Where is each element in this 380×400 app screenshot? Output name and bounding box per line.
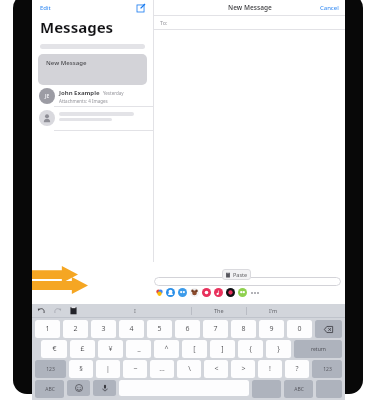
button[interactable]: App Store xyxy=(156,289,163,296)
button[interactable]: Game xyxy=(238,288,247,297)
staticText: JE xyxy=(45,93,50,100)
staticText: ] xyxy=(221,344,224,354)
button[interactable]: { xyxy=(238,340,263,358)
staticText: … xyxy=(159,364,165,374)
button[interactable]: | xyxy=(96,360,120,378)
staticText: New Message xyxy=(46,59,87,67)
button[interactable]: Backspace xyxy=(315,320,342,338)
button[interactable]: JE xyxy=(39,88,147,104)
staticText: Messages xyxy=(40,17,114,37)
button[interactable]: \ xyxy=(177,360,201,378)
staticText: ABC xyxy=(45,386,55,393)
staticText: 1 xyxy=(45,324,50,334)
staticText: Cancel xyxy=(320,4,339,12)
button[interactable]: > xyxy=(231,360,255,378)
button[interactable]: < xyxy=(204,360,228,378)
button[interactable]: Emoji xyxy=(67,380,90,396)
button[interactable]: New Message xyxy=(38,54,147,85)
button[interactable]: € xyxy=(41,340,67,358)
button[interactable]: [ xyxy=(182,340,207,358)
button[interactable]: More apps xyxy=(250,288,259,297)
staticText: John Example xyxy=(59,89,100,97)
button[interactable]: 5 xyxy=(147,320,172,338)
staticText: 2 xyxy=(73,324,78,334)
staticText: 7 xyxy=(213,324,218,334)
button[interactable]: £ xyxy=(70,340,95,358)
button[interactable]: 123 xyxy=(35,360,66,378)
staticText: Yesterday xyxy=(103,90,124,96)
staticText: ? xyxy=(295,364,299,374)
staticText: Attachments: 4 Images xyxy=(59,98,108,104)
button[interactable]: return xyxy=(294,340,342,358)
staticText: _ xyxy=(137,344,141,354)
staticText: ~ xyxy=(133,364,138,374)
button[interactable]: ? xyxy=(285,360,309,378)
button[interactable]: ^ xyxy=(154,340,179,358)
button[interactable]: 6 xyxy=(175,320,200,338)
button[interactable]: Paste xyxy=(69,306,78,315)
button[interactable]: Animoji xyxy=(178,288,187,297)
button[interactable]: Cancel xyxy=(318,2,341,14)
button[interactable]: ] xyxy=(210,340,235,358)
button[interactable]: Edit xyxy=(38,4,53,12)
staticText: 123 xyxy=(323,366,332,373)
button[interactable]: Undo xyxy=(37,306,46,315)
button[interactable]: § xyxy=(69,360,93,378)
staticText: 6 xyxy=(185,324,190,334)
button[interactable]: ! xyxy=(258,360,282,378)
staticText: 8 xyxy=(241,324,246,334)
button[interactable]: ABC xyxy=(35,380,64,398)
button[interactable]: ~ xyxy=(123,360,147,378)
staticText: 9 xyxy=(269,324,274,334)
button[interactable] xyxy=(154,277,341,286)
button[interactable]: Photos xyxy=(166,288,175,297)
staticText: New Message xyxy=(228,3,272,12)
button[interactable]: 9 xyxy=(259,320,284,338)
button[interactable]: … xyxy=(150,360,174,378)
staticText: £ xyxy=(80,344,85,354)
button[interactable]: ABC xyxy=(284,380,313,398)
button[interactable]: Digital Touch xyxy=(202,288,211,297)
button[interactable]: 123 xyxy=(312,360,342,378)
button[interactable]: 8 xyxy=(231,320,256,338)
staticText: § xyxy=(79,364,83,374)
staticText: ! xyxy=(269,364,271,374)
button[interactable]: Paste xyxy=(222,269,251,280)
button[interactable]: Compose new message xyxy=(135,2,147,14)
button[interactable]: 1 xyxy=(35,320,60,338)
button[interactable]: Dictation xyxy=(93,380,116,396)
staticText: To: xyxy=(160,19,168,26)
button[interactable]: 7 xyxy=(203,320,228,338)
button[interactable]: Music xyxy=(214,288,223,297)
button[interactable]: ¥ xyxy=(98,340,123,358)
button[interactable]: Stickers xyxy=(190,288,199,297)
button[interactable]: 0 xyxy=(287,320,312,338)
staticText: 123 xyxy=(46,366,55,373)
staticText: € xyxy=(52,344,57,354)
staticText: | xyxy=(106,364,110,374)
staticText: 0 xyxy=(297,324,302,334)
staticText: { xyxy=(249,344,252,354)
button[interactable]: 4 xyxy=(119,320,144,338)
staticText: 3 xyxy=(101,324,106,334)
staticText: return xyxy=(311,346,326,353)
button[interactable] xyxy=(39,110,147,126)
button[interactable]: 2 xyxy=(63,320,88,338)
button[interactable]: Memoji xyxy=(226,288,235,297)
staticText: 4 xyxy=(129,324,134,334)
staticText: I'm xyxy=(269,307,278,314)
staticText: I xyxy=(134,307,136,314)
button[interactable]: } xyxy=(266,340,291,358)
staticText: \ xyxy=(188,364,191,374)
staticText: } xyxy=(277,344,280,354)
button[interactable]: Redo xyxy=(53,306,62,315)
staticText: ^ xyxy=(164,344,169,354)
staticText: The xyxy=(214,307,224,314)
button[interactable]: 3 xyxy=(91,320,116,338)
staticText: > xyxy=(241,364,246,374)
button[interactable]: _ xyxy=(126,340,151,358)
